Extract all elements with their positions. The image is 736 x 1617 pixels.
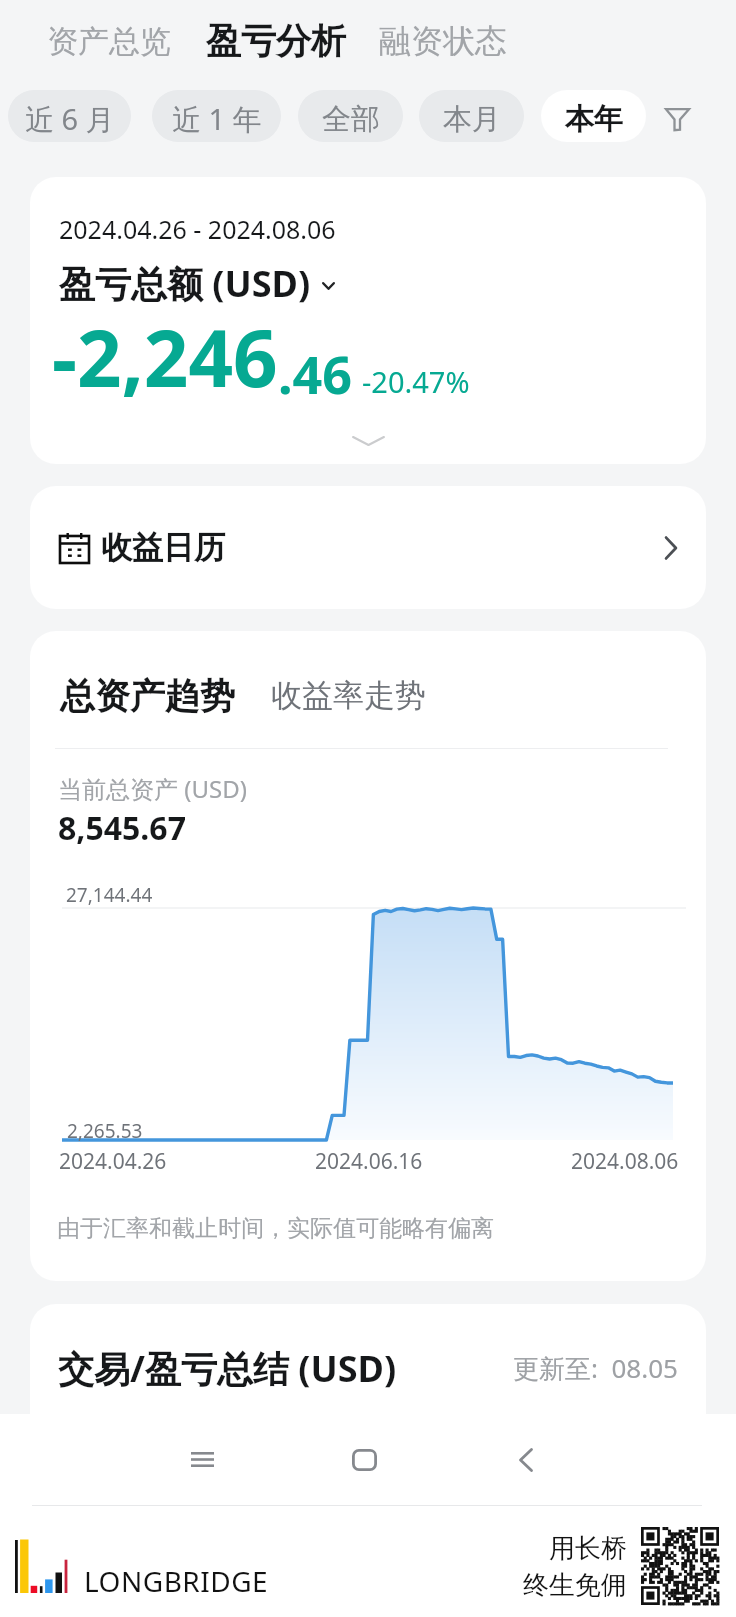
- button[interactable]: Filter: [658, 96, 698, 136]
- button[interactable]: 收益日历: [30, 486, 706, 609]
- staticText: 2024.06.16: [315, 1147, 423, 1175]
- staticText: 2024.08.06: [571, 1147, 679, 1175]
- staticText: 收益日历: [101, 528, 225, 567]
- button[interactable]: 全部: [298, 90, 403, 142]
- staticText: 8,545.67: [58, 806, 186, 850]
- staticText: 近 6 月: [25, 99, 115, 139]
- button[interactable]: 融资状态: [371, 11, 515, 71]
- staticText: 用长桥: [549, 1532, 627, 1565]
- staticText: 总资产趋势: [60, 674, 235, 718]
- button[interactable]: 资产总览: [39, 12, 179, 71]
- staticText: 更新至: 08.05: [513, 1350, 678, 1386]
- button[interactable]: 收益率走势: [271, 676, 426, 718]
- staticText: -20.47%: [362, 362, 470, 401]
- staticText: 全部: [322, 101, 380, 138]
- button[interactable]: Home: [324, 1414, 404, 1505]
- staticText: 融资状态: [379, 21, 507, 61]
- staticText: -2,246: [52, 304, 278, 410]
- staticText: 终生免佣: [523, 1569, 627, 1602]
- staticText: 本月: [443, 101, 501, 138]
- button[interactable]: 总资产趋势: [60, 674, 235, 718]
- staticText: 交易/盈亏总结 (USD): [58, 1344, 397, 1393]
- staticText: 盈亏分析: [206, 19, 346, 63]
- staticText: 由于汇率和截止时间，实际值可能略有偏离: [57, 1214, 494, 1243]
- button[interactable]: 本月: [419, 90, 524, 142]
- staticText: 资产总览: [47, 22, 171, 61]
- staticText: 2,265.53: [67, 1118, 143, 1144]
- staticText: 盈亏总额 (USD): [59, 259, 311, 308]
- button[interactable]: Recent apps: [162, 1414, 242, 1505]
- staticText: LONGBRIDGE: [84, 1562, 269, 1600]
- staticText: 2024.04.26 - 2024.08.06: [59, 212, 336, 246]
- button[interactable]: 盈亏分析: [198, 9, 354, 73]
- button[interactable]: 近 1 年: [152, 90, 281, 142]
- staticText: 近 1 年: [172, 99, 262, 139]
- staticText: 2024.04.26: [59, 1147, 167, 1175]
- button[interactable]: Back: [486, 1414, 566, 1505]
- staticText: 本年: [565, 101, 623, 138]
- staticText: 27,144.44: [66, 882, 153, 908]
- button[interactable]: 本年: [541, 90, 646, 142]
- staticText: 当前总资产 (USD): [58, 772, 247, 805]
- button[interactable]: 2024.04.26 - 2024.08.06: [30, 177, 706, 464]
- staticText: 收益率走势: [271, 676, 426, 715]
- staticText: .46: [278, 338, 353, 409]
- button[interactable]: 近 6 月: [8, 90, 131, 142]
